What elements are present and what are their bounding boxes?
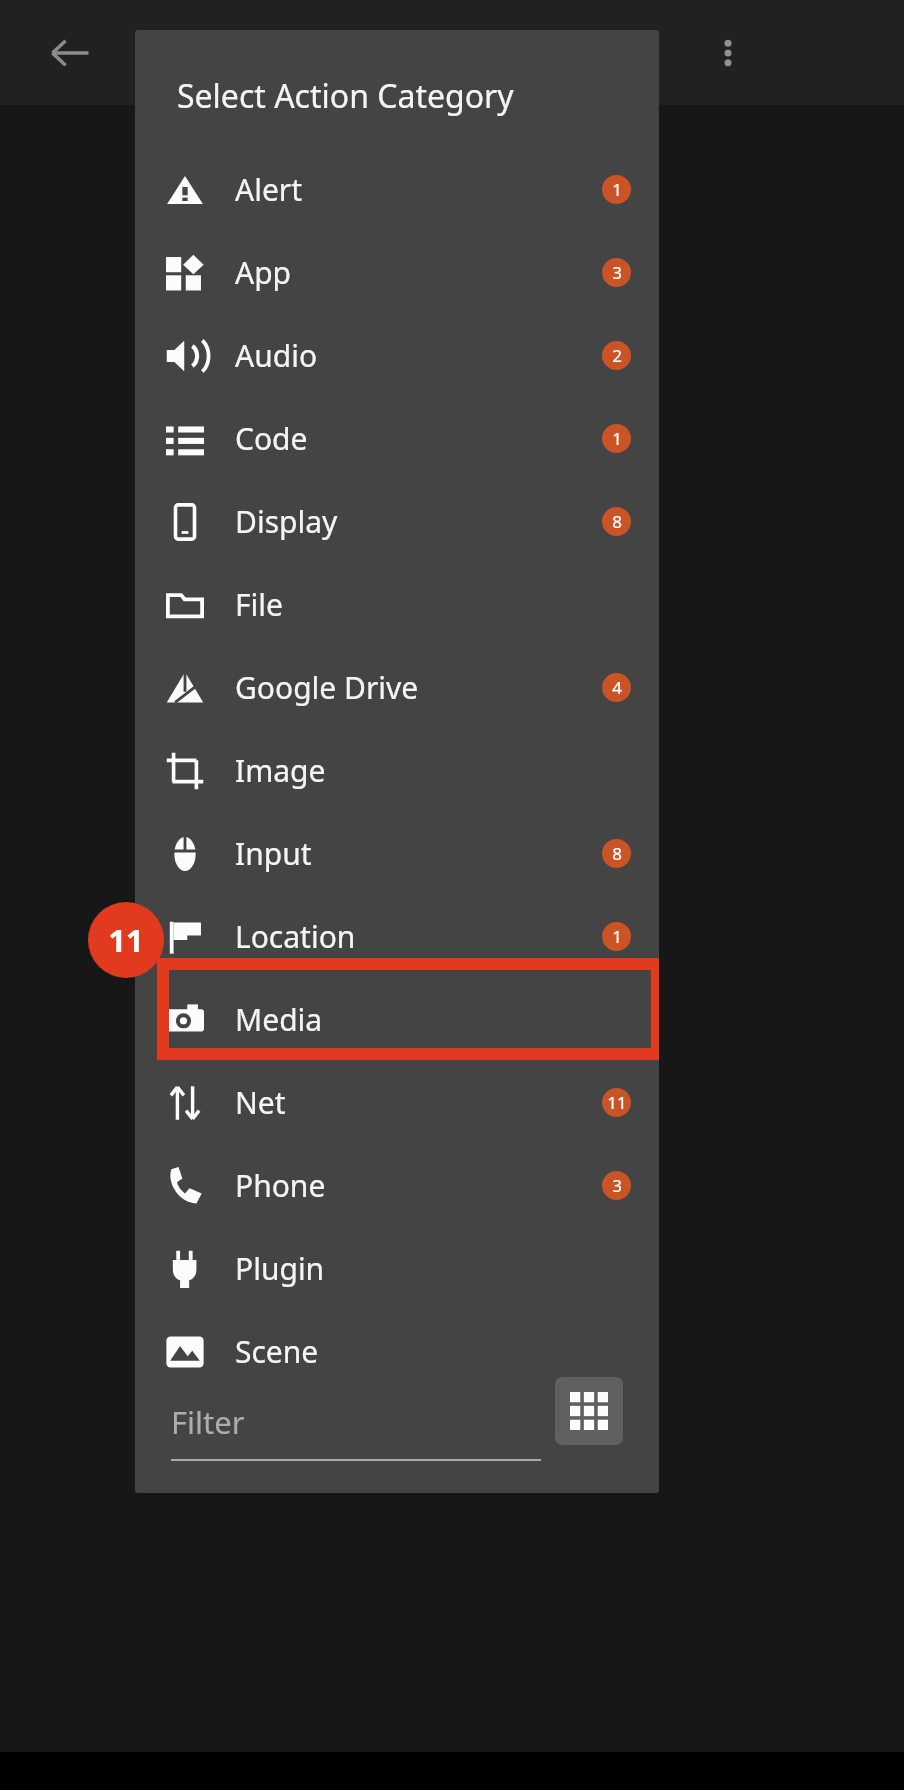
staticText: Select Action Category (177, 74, 514, 118)
staticText: 1 (612, 178, 622, 201)
button[interactable]: Input (135, 812, 659, 895)
button[interactable]: Location (135, 895, 659, 978)
button[interactable]: Code (135, 397, 659, 480)
staticText: App (235, 252, 292, 293)
button[interactable]: Scene (135, 1310, 659, 1393)
staticText: Code (235, 418, 308, 459)
staticText: Google Drive (235, 667, 419, 708)
staticText: 3 (612, 261, 622, 284)
staticText: Image (235, 750, 326, 791)
button[interactable]: Phone (135, 1144, 659, 1227)
button[interactable]: App (135, 231, 659, 314)
staticText: 1 (612, 925, 622, 948)
staticText: Alert (235, 169, 303, 210)
staticText: 11 (108, 919, 144, 961)
button[interactable]: Alert (135, 148, 659, 231)
button[interactable]: More options (706, 31, 750, 75)
staticText: Phone (235, 1165, 326, 1206)
staticText: Media (235, 999, 323, 1040)
button[interactable]: Grid view (555, 1377, 623, 1445)
staticText: Display (235, 501, 338, 542)
button[interactable]: File (135, 563, 659, 646)
button[interactable]: Display (135, 480, 659, 563)
button[interactable]: Image (135, 729, 659, 812)
staticText: 8 (612, 510, 622, 533)
staticText: 2 (612, 344, 622, 367)
staticText: Audio (235, 335, 318, 376)
staticText: 11 (607, 1091, 627, 1114)
button[interactable]: Net (135, 1061, 659, 1144)
staticText: Filter (171, 1401, 245, 1443)
staticText: File (235, 584, 283, 625)
staticText: Input (235, 833, 312, 874)
button[interactable]: Back (48, 31, 92, 75)
button[interactable]: Google Drive (135, 646, 659, 729)
staticText: Net (235, 1082, 286, 1123)
staticText: Scene (235, 1331, 319, 1372)
staticText: Plugin (235, 1248, 325, 1289)
button[interactable]: Media (135, 978, 659, 1061)
staticText: Location (235, 916, 356, 957)
button[interactable]: Filter (171, 1401, 541, 1461)
staticText: 3 (612, 1174, 622, 1197)
staticText: 4 (612, 676, 622, 699)
button[interactable]: Plugin (135, 1227, 659, 1310)
button[interactable]: Audio (135, 314, 659, 397)
staticText: 8 (612, 842, 622, 865)
staticText: 1 (612, 427, 622, 450)
